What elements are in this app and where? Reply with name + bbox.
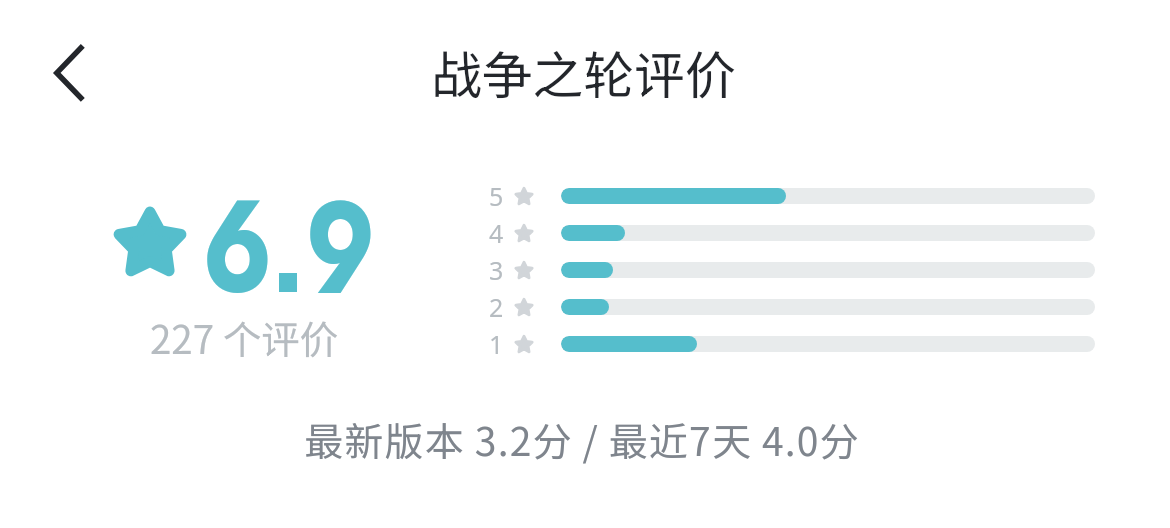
button[interactable]: 5 — [488, 177, 1095, 215]
staticText: 227 个评价 — [150, 309, 339, 365]
button[interactable]: 3 — [488, 251, 1095, 289]
button[interactable]: 4 — [488, 214, 1095, 252]
staticText: 战争之轮评价 — [431, 35, 736, 109]
button[interactable]: 1 — [488, 325, 1095, 363]
staticText: 4 — [489, 216, 504, 250]
button[interactable]: 2 — [488, 288, 1095, 326]
button[interactable]: Back — [30, 36, 92, 98]
staticText: 1 — [489, 327, 504, 361]
staticText: 2 — [489, 290, 504, 324]
staticText: 6 — [202, 153, 273, 339]
staticText: 3 — [489, 253, 504, 287]
staticText: 最新版本 3.2分 / 最近7天 4.0分 — [0, 411, 1167, 467]
staticText: 9 — [305, 155, 376, 341]
staticText: 5 — [489, 179, 504, 213]
